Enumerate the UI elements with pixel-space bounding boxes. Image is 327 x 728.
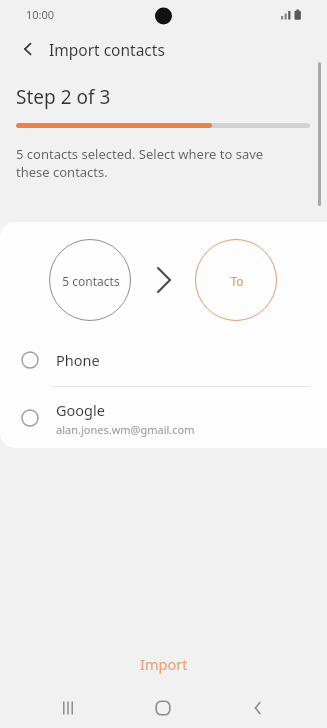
button[interactable]: Home [147,692,179,724]
button[interactable]: Google [0,392,327,444]
staticText: To [230,273,244,289]
staticText: Google [56,400,105,420]
staticText: 5 contacts [62,273,120,289]
staticText: alan.jones.wm@gmail.com [56,422,195,437]
button[interactable]: Import [0,645,327,683]
staticText: Import [140,654,188,674]
staticText: Step 2 of 3 [16,84,111,110]
staticText: 10:00 [26,7,55,22]
button[interactable]: Phone [0,336,327,384]
button[interactable]: To [196,240,277,321]
staticText: Import contacts [49,39,165,60]
staticText: 5 contacts selected. Select where to sav… [16,145,291,181]
staticText: Phone [56,350,100,370]
button[interactable]: 5 contacts [50,240,131,321]
button[interactable]: Navigate up [11,32,45,66]
button[interactable]: Recent apps [52,692,84,724]
button[interactable]: Back [242,692,274,724]
